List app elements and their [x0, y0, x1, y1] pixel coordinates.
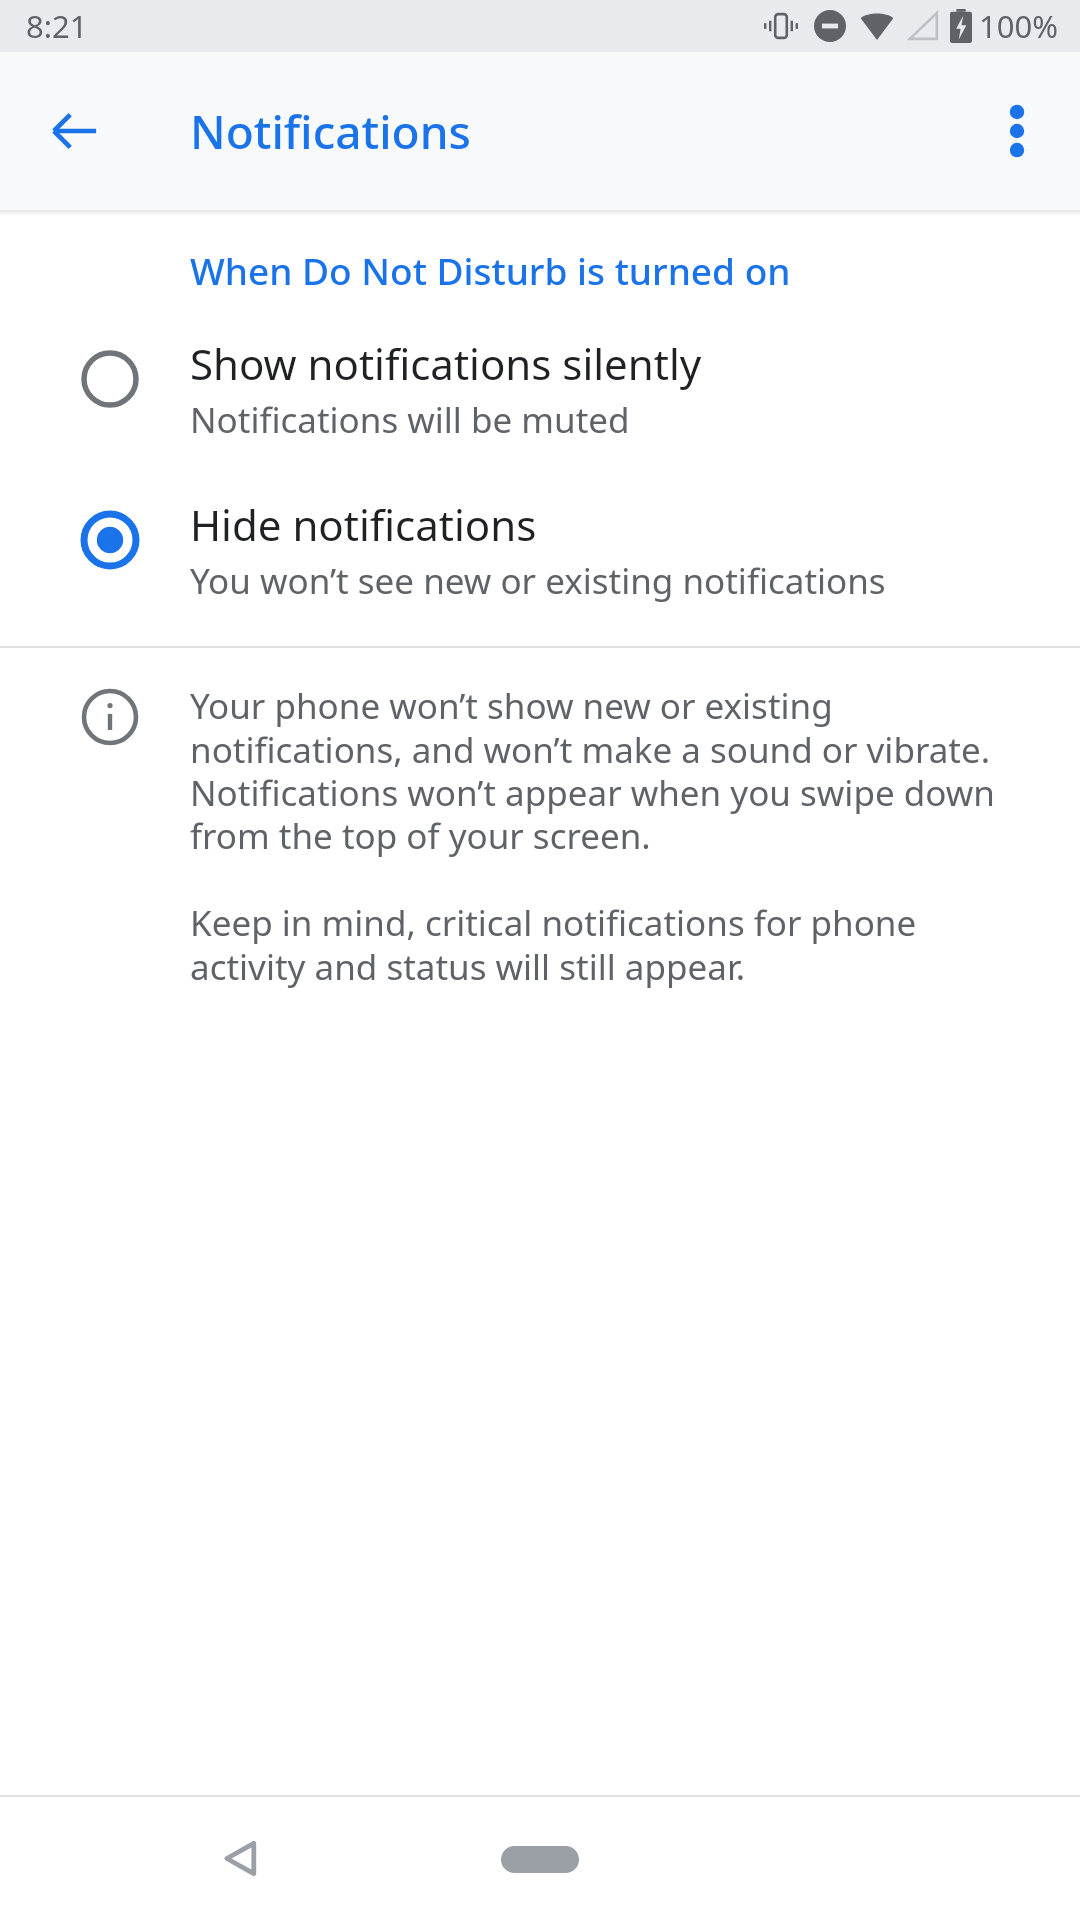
- staticText: Your phone won’t show new or existing no…: [190, 682, 1034, 859]
- button[interactable]: Home: [465, 1814, 615, 1904]
- staticText: Hide notifications: [190, 496, 537, 553]
- staticText: When Do Not Disturb is turned on: [190, 245, 791, 295]
- button[interactable]: Back: [23, 79, 127, 183]
- button[interactable]: More options: [967, 81, 1067, 181]
- staticText: Notifications will be muted: [190, 396, 630, 444]
- staticText: Show notifications silently: [190, 335, 702, 392]
- staticText: 8:21: [26, 5, 88, 47]
- button[interactable]: Show notifications silently: [0, 327, 1080, 448]
- staticText: 100%: [979, 5, 1058, 47]
- staticText: Keep in mind, critical notifications for…: [190, 899, 1034, 990]
- button[interactable]: Back: [178, 1797, 302, 1920]
- staticText: Notifications: [190, 100, 471, 163]
- staticText: You won’t see new or existing notificati…: [190, 557, 886, 605]
- button[interactable]: Hide notifications: [0, 488, 1080, 609]
